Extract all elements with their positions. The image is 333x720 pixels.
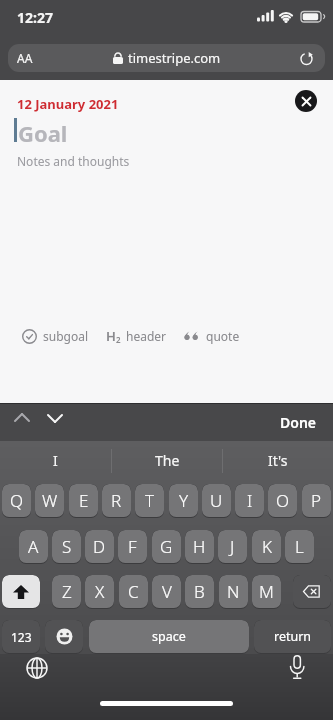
button[interactable]: B: [185, 575, 214, 609]
button[interactable]: L: [285, 530, 314, 564]
button[interactable]: [43, 410, 67, 428]
staticText: B: [194, 580, 205, 603]
staticText: U: [210, 489, 223, 512]
button[interactable]: I: [0, 441, 111, 480]
button[interactable]: M: [252, 575, 281, 609]
button[interactable]: O: [268, 484, 297, 518]
button[interactable]: [295, 90, 317, 112]
button[interactable]: R: [102, 484, 131, 518]
staticText: D: [93, 535, 106, 558]
staticText: subgoal: [43, 328, 89, 344]
button[interactable]: J: [218, 530, 247, 564]
staticText: X: [95, 580, 105, 603]
staticText: 2: [116, 334, 121, 345]
staticText: I: [247, 489, 253, 512]
staticText: The: [155, 451, 180, 470]
button[interactable]: E: [69, 484, 98, 518]
staticText: P: [311, 489, 322, 512]
button[interactable]: [22, 654, 52, 682]
staticText: N: [227, 580, 240, 603]
button[interactable]: H: [185, 530, 214, 564]
button[interactable]: It's: [223, 441, 333, 480]
staticText: Z: [62, 580, 72, 603]
button[interactable]: subgoal: [22, 328, 89, 344]
staticText: Notes and thoughts: [17, 153, 130, 169]
button[interactable]: return: [254, 620, 331, 654]
staticText: W: [42, 489, 58, 512]
button[interactable]: W: [35, 484, 64, 518]
staticText: It's: [268, 451, 288, 470]
button[interactable]: [293, 575, 331, 609]
button[interactable]: I: [235, 484, 264, 518]
button[interactable]: Q: [2, 484, 31, 518]
button[interactable]: Z: [52, 575, 81, 609]
staticText: V: [162, 580, 172, 603]
button[interactable]: A: [19, 530, 48, 564]
button[interactable]: C: [119, 575, 148, 609]
button[interactable]: U: [202, 484, 231, 518]
staticText: Done: [280, 413, 317, 432]
staticText: M: [259, 580, 274, 603]
button[interactable]: [2, 575, 40, 609]
button[interactable]: H: [106, 327, 167, 345]
staticText: C: [128, 580, 139, 603]
button[interactable]: 123: [2, 620, 40, 654]
staticText: Q: [10, 489, 24, 512]
staticText: H: [106, 327, 116, 345]
staticText: A: [28, 535, 39, 558]
button[interactable]: AA: [8, 44, 325, 72]
button[interactable]: V: [152, 575, 181, 609]
staticText: S: [62, 535, 72, 558]
staticText: F: [128, 535, 137, 558]
button[interactable]: [283, 654, 311, 682]
staticText: 12:27: [17, 8, 53, 27]
staticText: L: [295, 535, 304, 558]
staticText: E: [79, 489, 89, 512]
staticText: G: [160, 535, 173, 558]
button[interactable]: Y: [169, 484, 198, 518]
button[interactable]: K: [252, 530, 281, 564]
button[interactable]: [45, 620, 83, 654]
button[interactable]: space: [89, 620, 249, 654]
button[interactable]: quote: [184, 328, 240, 344]
staticText: space: [152, 628, 186, 645]
staticText: H: [193, 535, 206, 558]
staticText: R: [111, 489, 122, 512]
button[interactable]: S: [52, 530, 81, 564]
staticText: T: [145, 489, 155, 512]
button[interactable]: [10, 409, 34, 427]
staticText: J: [230, 535, 235, 558]
staticText: Y: [179, 489, 189, 512]
button[interactable]: G: [152, 530, 181, 564]
staticText: AA: [17, 50, 33, 66]
staticText: 123: [11, 629, 32, 645]
button[interactable]: Done: [280, 413, 317, 432]
staticText: I: [53, 451, 58, 470]
staticText: Goal: [18, 118, 68, 148]
button[interactable]: F: [118, 530, 147, 564]
staticText: header: [126, 328, 167, 344]
button[interactable]: D: [85, 530, 114, 564]
staticText: timestripe.com: [128, 49, 221, 67]
staticText: O: [276, 489, 290, 512]
button[interactable]: N: [219, 575, 248, 609]
button[interactable]: T: [135, 484, 164, 518]
staticText: 12 January 2021: [17, 95, 119, 113]
staticText: K: [262, 535, 272, 558]
button[interactable]: X: [85, 575, 114, 609]
staticText: quote: [206, 328, 240, 344]
button[interactable]: The: [112, 441, 222, 480]
staticText: return: [274, 628, 312, 645]
button[interactable]: P: [302, 484, 331, 518]
